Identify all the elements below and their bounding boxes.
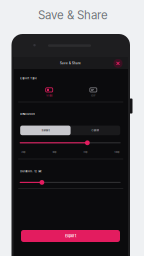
button[interactable]: Video [25,84,73,100]
button[interactable]: Standard [20,126,71,135]
staticText: 720p [83,151,87,153]
staticText: Duration: 12 sec [20,170,41,173]
staticText: Resolution [20,112,35,116]
staticText: Video [46,94,52,97]
staticText: Save & Share [38,8,108,22]
staticText: 1080p [114,151,119,153]
button[interactable]: GIF [69,84,117,100]
staticText: Export Type [20,77,36,80]
staticText: Save & Share [60,61,81,65]
staticText: 480p [52,151,56,153]
button[interactable]: Export [21,230,120,242]
button[interactable]: Close [112,58,123,69]
staticText: Export [65,234,76,238]
button[interactable]: Custom [71,126,120,135]
staticText: 240p [21,151,25,153]
staticText: Custom [91,129,99,132]
staticText: Standard [41,129,49,132]
staticText: GIF [91,94,95,97]
